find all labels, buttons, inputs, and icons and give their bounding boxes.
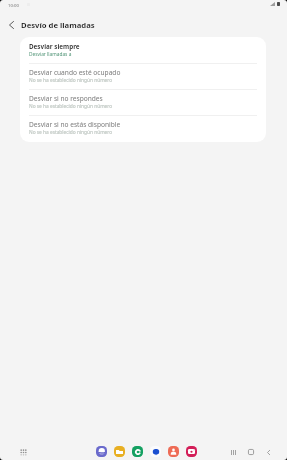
button[interactable]: Back <box>4 18 18 32</box>
button[interactable]: Internet <box>96 446 107 457</box>
button[interactable]: Messages <box>150 446 161 457</box>
staticText: Desvío de llamadas <box>21 20 95 30</box>
button[interactable]: Apps <box>15 444 31 460</box>
button[interactable]: Home <box>244 445 258 459</box>
staticText: No se ha establecido ningún número <box>29 129 113 136</box>
button[interactable]: Back <box>261 445 275 459</box>
button[interactable]: Desviar siempre <box>20 37 266 63</box>
staticText: No se ha establecido ningún número <box>29 103 113 110</box>
button[interactable]: Recents <box>226 445 240 459</box>
button[interactable]: Contacts <box>168 446 179 457</box>
staticText: No se ha establecido ningún número <box>29 77 113 84</box>
button[interactable]: My Files <box>114 446 125 457</box>
button[interactable]: Desviar si no estás disponible <box>20 115 266 142</box>
staticText: Desviar llamadas a <box>29 51 72 58</box>
staticText: Desviar cuando esté ocupado <box>29 68 121 77</box>
staticText: Desviar si no respondes <box>29 94 103 103</box>
staticText: Desviar si no estás disponible <box>29 120 121 129</box>
button[interactable]: Desviar si no respondes <box>20 89 266 115</box>
staticText: 10:00 <box>8 2 19 8</box>
button[interactable]: Camera <box>186 446 197 457</box>
button[interactable]: Desviar cuando esté ocupado <box>20 63 266 89</box>
button[interactable]: Phone <box>132 446 143 457</box>
staticText: Desviar siempre <box>29 42 80 51</box>
